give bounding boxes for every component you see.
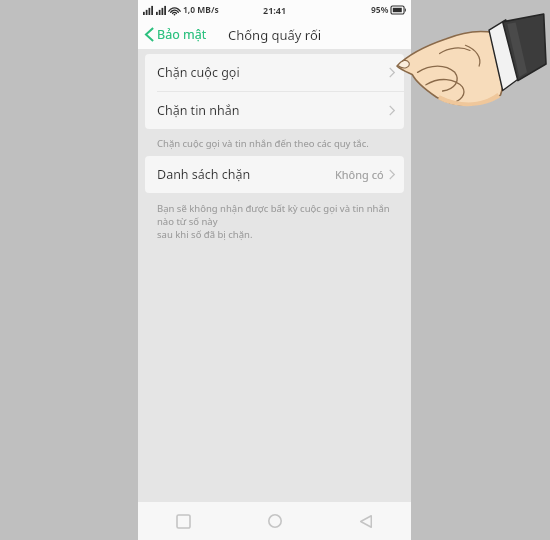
button[interactable]: Chặn tin nhắn <box>145 92 404 129</box>
staticText: Bạn sẽ không nhận được bất kỳ cuộc gọi v… <box>157 202 397 241</box>
staticText: Bảo mật <box>157 26 207 43</box>
button[interactable]: Danh sách chặn <box>145 156 404 193</box>
button[interactable]: Home <box>229 502 320 540</box>
button[interactable]: Chặn cuộc gọi <box>145 54 404 91</box>
staticText: Chặn cuộc gọi <box>157 64 240 81</box>
staticText: Chặn cuộc gọi và tin nhắn đến theo các q… <box>157 137 369 150</box>
staticText: 95% <box>371 4 389 16</box>
button[interactable]: Back <box>320 502 411 540</box>
button[interactable]: Bảo mật <box>138 22 215 47</box>
staticText: 1,0 MB/s <box>183 4 219 16</box>
staticText: 21:41 <box>263 4 287 16</box>
staticText: Chặn tin nhắn <box>157 102 240 119</box>
staticText: Danh sách chặn <box>157 166 251 183</box>
staticText: Không có <box>335 167 384 182</box>
button[interactable]: Recent apps <box>138 502 229 540</box>
staticText: Chống quấy rối <box>228 26 322 44</box>
